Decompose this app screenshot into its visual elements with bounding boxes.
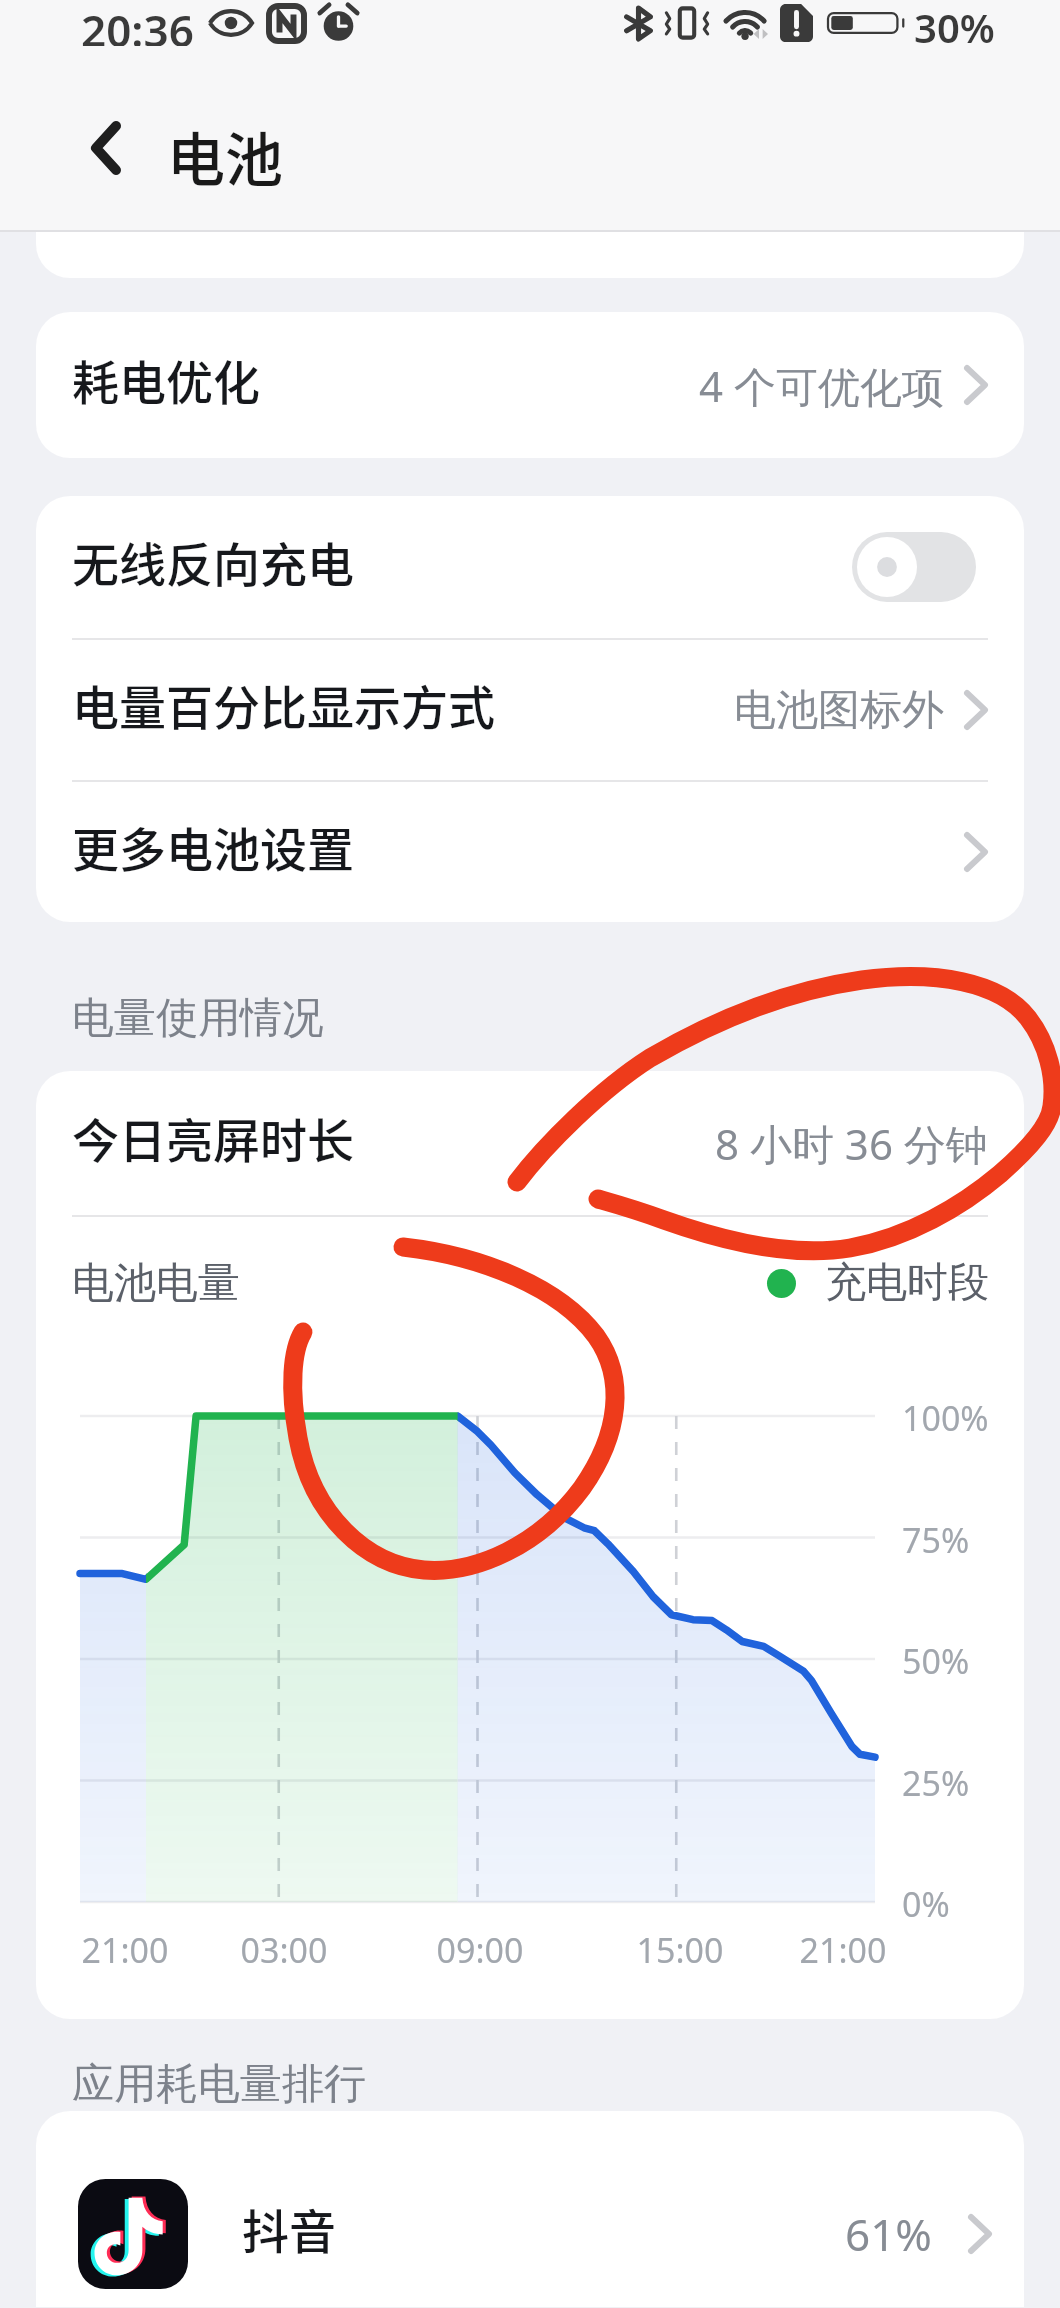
staticText: 电池 <box>167 114 284 198</box>
staticText: 03:00 <box>194 1927 374 1973</box>
staticText: 电池电量 <box>72 1257 240 1310</box>
staticText: 无线反向充电 <box>72 527 354 595</box>
staticText: 今日亮屏时长 <box>72 1103 354 1171</box>
staticText: 21:00 <box>36 1927 215 1973</box>
staticText: 应用耗电量排行 <box>72 2058 366 2111</box>
button[interactable]: 今日亮屏时长 <box>36 1071 1024 1215</box>
staticText: 电池图标外 <box>734 684 944 737</box>
staticText: 09:00 <box>390 1927 570 1973</box>
staticText: 75% <box>902 1517 970 1563</box>
staticText: 30% <box>914 0 995 46</box>
staticText: 4 个可优化项 <box>699 357 944 414</box>
staticText: 电量使用情况 <box>72 992 324 1045</box>
staticText: 8 小时 36 分钟 <box>715 1115 988 1172</box>
staticText: 0% <box>902 1881 950 1927</box>
staticText: 充电时段 <box>825 1257 989 1309</box>
button[interactable]: 抖音 <box>36 2136 1024 2307</box>
staticText: 20:36 <box>81 0 194 46</box>
button[interactable]: 无线反向充电 <box>36 496 1024 638</box>
button[interactable]: 电量百分比显示方式 <box>36 640 1024 780</box>
staticText: 更多电池设置 <box>72 812 354 880</box>
staticText: 25% <box>902 1760 970 1806</box>
staticText: 15:00 <box>590 1927 770 1973</box>
staticText: 耗电优化 <box>72 345 260 413</box>
staticText: 电量百分比显示方式 <box>72 670 495 738</box>
staticText: 100% <box>902 1395 989 1441</box>
button[interactable]: Back <box>40 104 172 232</box>
staticText: 61% <box>845 2204 932 2264</box>
staticText: 50% <box>902 1638 970 1684</box>
button[interactable]: 更多电池设置 <box>36 782 1024 922</box>
staticText: 抖音 <box>242 2194 336 2262</box>
button[interactable]: 无线反向充电 开关 <box>852 532 976 602</box>
staticText: 21:00 <box>753 1927 933 1973</box>
button[interactable]: 耗电优化 <box>36 312 1024 458</box>
